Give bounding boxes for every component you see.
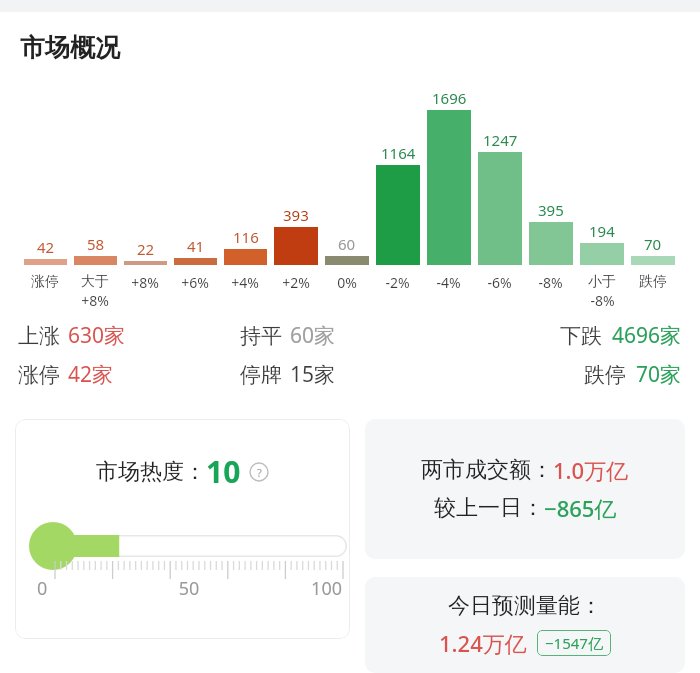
staticText: 0% [337, 273, 357, 292]
staticText: 0 [37, 576, 138, 601]
staticText: 70家 [636, 360, 682, 389]
staticText: 1.24万亿 [439, 628, 527, 658]
staticText: 1164 [381, 143, 416, 163]
staticText: +4% [231, 273, 259, 292]
staticText: 1.0万亿 [553, 455, 629, 485]
button[interactable]: 帮助 [249, 462, 269, 482]
staticText: +2% [282, 273, 310, 292]
staticText: 涨停 [18, 362, 60, 388]
staticText: 停牌 [240, 362, 282, 388]
staticText: 395 [538, 200, 564, 220]
button[interactable]: 两市成交额： [365, 419, 685, 559]
staticText: -6% [487, 273, 512, 292]
staticText: 116 [233, 227, 259, 247]
staticText: 100 [240, 576, 342, 601]
staticText: 393 [283, 205, 309, 225]
staticText: −865亿 [544, 493, 617, 523]
staticText: +6% [181, 273, 209, 292]
staticText: 涨停 [31, 273, 59, 291]
staticText: 10 [206, 451, 241, 492]
staticText: 60家 [290, 321, 336, 350]
staticText: 小于 [588, 273, 616, 291]
staticText: 1247 [483, 130, 518, 150]
staticText: ? [257, 465, 262, 480]
staticText: +8% [131, 273, 159, 292]
staticText: 大于 [81, 273, 109, 291]
staticText: 630家 [68, 321, 126, 350]
staticText: 持平 [240, 323, 282, 349]
staticText: -4% [436, 273, 461, 292]
staticText: 较上一日： [434, 494, 544, 522]
staticText: 70 [644, 234, 662, 254]
staticText: 58 [87, 234, 105, 254]
staticText: 4696家 [612, 321, 682, 350]
staticText: 下跌 [560, 323, 602, 349]
staticText: 上涨 [18, 323, 60, 349]
staticText: 42 [37, 237, 55, 257]
staticText: -8% [590, 291, 615, 307]
button[interactable]: 市场热度： [15, 419, 350, 639]
staticText: 跌停 [639, 273, 667, 291]
staticText: 22 [137, 239, 155, 259]
staticText: 42家 [68, 360, 114, 389]
staticText: 15家 [290, 360, 336, 389]
staticText: 跌停 [584, 362, 626, 388]
staticText: +8% [81, 291, 109, 307]
staticText: -2% [385, 273, 410, 292]
staticText: 1696 [432, 88, 467, 108]
staticText: 194 [589, 221, 615, 241]
staticText: 50 [138, 576, 240, 601]
staticText: 市场概况 [20, 32, 120, 63]
staticText: 41 [187, 236, 205, 256]
button[interactable]: 今日预测量能： [365, 577, 685, 673]
button[interactable]: 0 [15, 514, 350, 624]
staticText: 60 [338, 234, 356, 254]
staticText: 两市成交额： [421, 456, 553, 484]
staticText: 今日预测量能： [448, 592, 602, 620]
staticText: -8% [538, 273, 563, 292]
staticText: 市场热度： [96, 458, 206, 486]
staticText: −1547亿 [545, 633, 603, 653]
